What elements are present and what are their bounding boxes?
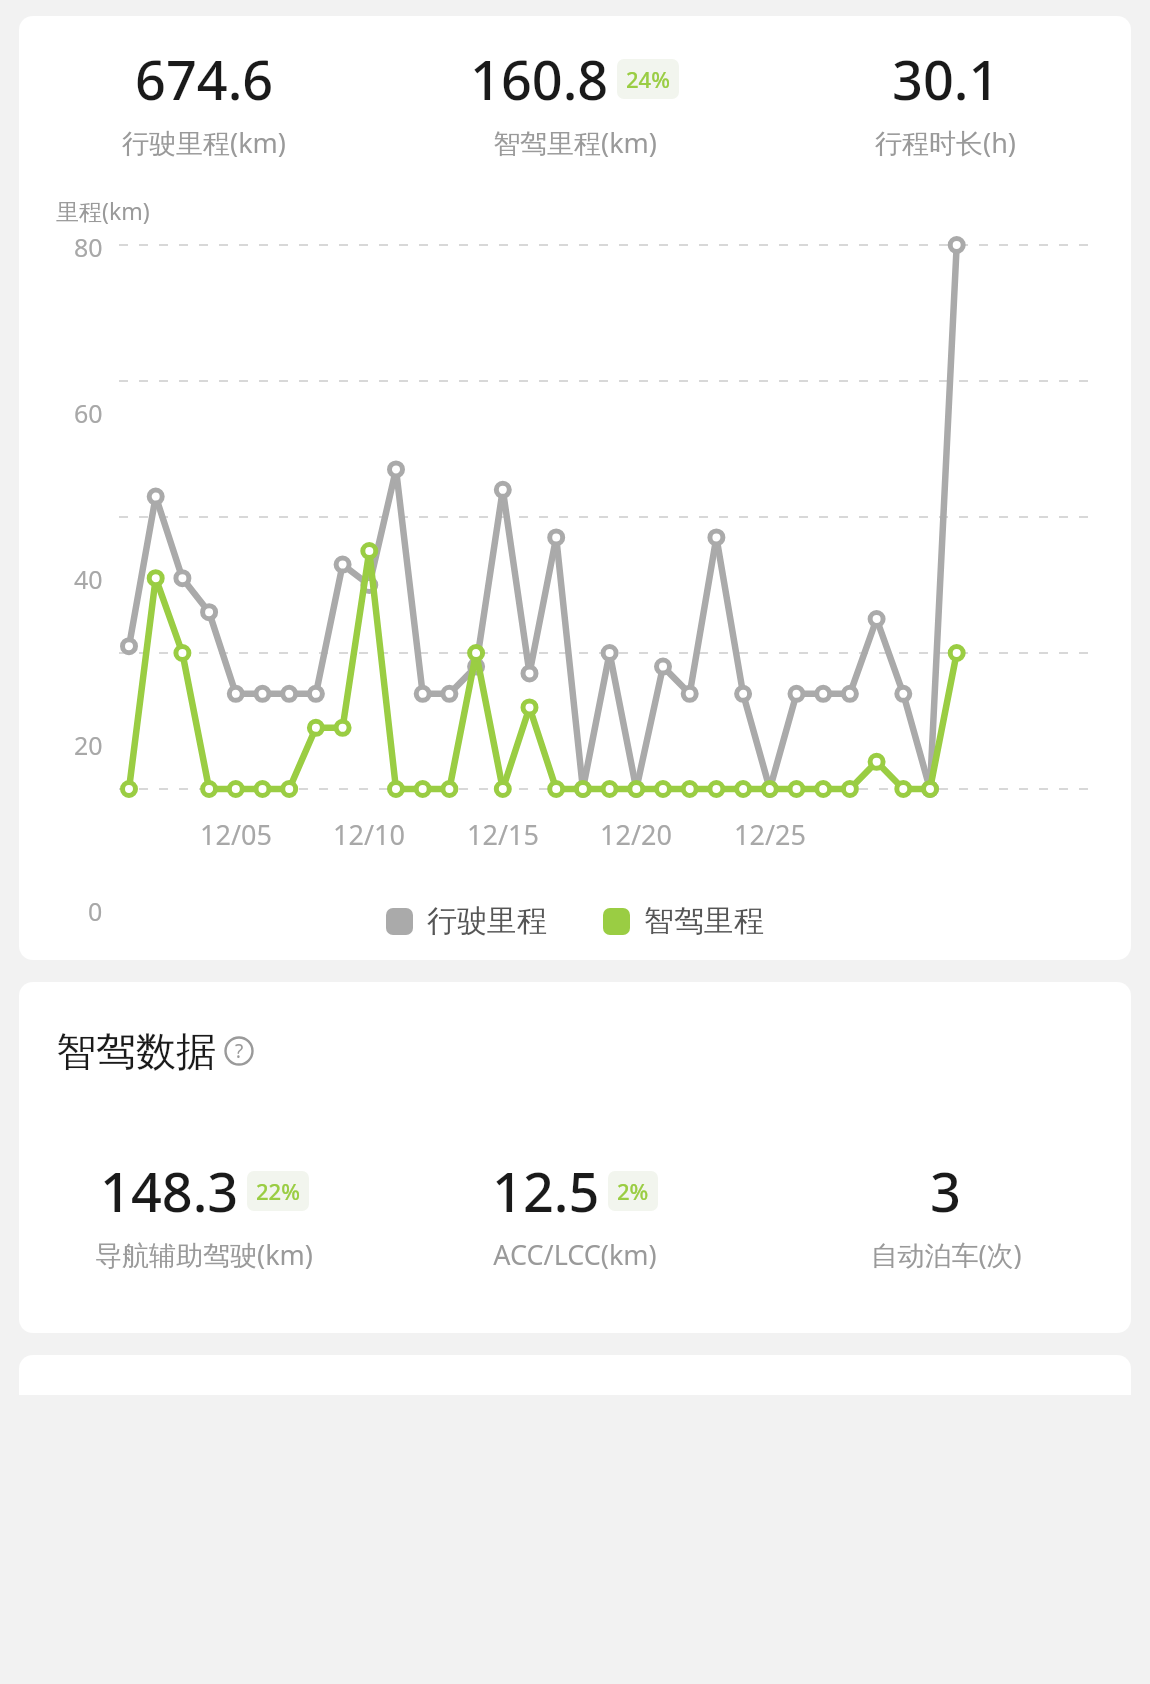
staticText: 2% (617, 1176, 649, 1206)
staticText: 22% (256, 1176, 300, 1206)
staticText: 里程(km) (56, 195, 150, 226)
staticText: ? (235, 1038, 244, 1064)
staticText: 24% (626, 64, 670, 94)
staticText: 148.3 (100, 1154, 239, 1228)
staticText: 80 (74, 230, 103, 260)
button[interactable]: 行驶里程 (386, 902, 547, 940)
staticText: 3 (930, 1154, 961, 1228)
staticText: 行驶里程 (427, 902, 547, 940)
staticText: 40 (74, 562, 103, 592)
staticText: 674.6 (135, 42, 274, 116)
staticText: 行驶里程(km) (122, 124, 286, 161)
button[interactable]: 148.3 (19, 1154, 389, 1273)
staticText: 0 (88, 894, 103, 924)
staticText: 12/10 (333, 816, 405, 853)
button[interactable]: 3 (760, 1154, 1131, 1273)
staticText: 自动泊车(次) (870, 1236, 1022, 1273)
staticText: 12/20 (600, 816, 672, 853)
staticText: 60 (74, 396, 103, 426)
button[interactable]: 智驾里程 (603, 902, 764, 940)
staticText: 30.1 (892, 42, 1000, 116)
button[interactable]: 674.6 (19, 42, 389, 161)
staticText: 12/25 (734, 816, 806, 853)
staticText: 智驾里程(km) (493, 124, 657, 161)
button[interactable]: Help about assisted driving data (224, 1036, 254, 1066)
button[interactable]: 12.5 (389, 1154, 760, 1273)
staticText: 160.8 (470, 42, 609, 116)
staticText: 12.5 (492, 1154, 600, 1228)
staticText: ACC/LCC(km) (493, 1236, 657, 1273)
staticText: 12/05 (200, 816, 272, 853)
button[interactable]: 160.8 (389, 42, 760, 161)
staticText: 智驾数据 (56, 1026, 216, 1076)
staticText: 12/15 (467, 816, 539, 853)
button[interactable]: 30.1 (760, 42, 1131, 161)
staticText: 行程时长(h) (875, 124, 1016, 161)
staticText: 智驾里程 (644, 902, 764, 940)
staticText: 20 (74, 728, 103, 758)
staticText: 导航辅助驾驶(km) (95, 1236, 313, 1273)
